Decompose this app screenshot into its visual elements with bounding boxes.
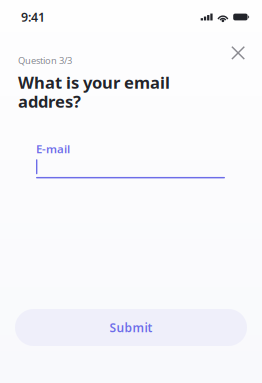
staticText: 9:41 <box>21 9 45 25</box>
staticText: Submit <box>109 319 152 336</box>
staticText: What is your email <box>18 71 170 93</box>
staticText: Question 3/3 <box>18 54 72 67</box>
staticText: E-mail <box>36 141 70 157</box>
button[interactable]: Close <box>222 37 254 69</box>
staticText: addres? <box>18 90 81 112</box>
button[interactable]: Submit <box>15 309 247 346</box>
